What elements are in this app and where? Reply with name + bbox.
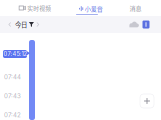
staticText: 今日 bbox=[15, 20, 27, 29]
button[interactable]: 小爱音 bbox=[65, 3, 117, 16]
button[interactable]: Cloud storage bbox=[127, 19, 140, 30]
staticText: 07:42 bbox=[4, 111, 21, 119]
staticText: 小爱音 bbox=[85, 4, 103, 13]
staticText: 实时视频 bbox=[27, 4, 51, 12]
button[interactable]: Next day bbox=[34, 19, 42, 30]
staticText: 07:44 bbox=[4, 73, 21, 81]
staticText: 消息 bbox=[129, 4, 141, 12]
button[interactable]: Album bbox=[141, 19, 151, 30]
staticText: 07:45:12 bbox=[3, 50, 26, 57]
button[interactable]: 消息 bbox=[112, 4, 159, 12]
button[interactable]: Previous day bbox=[6, 19, 14, 30]
button[interactable]: 实时视频 bbox=[8, 4, 62, 12]
staticText: 07:43 bbox=[4, 92, 21, 100]
button[interactable]: Add bbox=[140, 94, 154, 108]
